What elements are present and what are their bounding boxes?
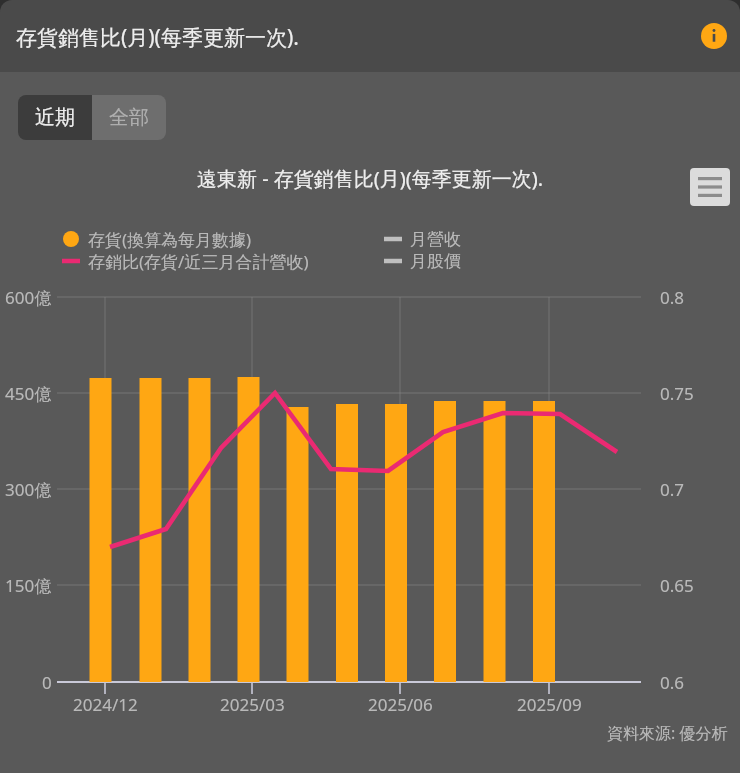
staticText: 資料來源: 優分析 (607, 722, 728, 744)
staticText: 存銷比(存貨/近三月合計營收) (88, 250, 309, 272)
staticText: 存貨(換算為每月數據) (88, 228, 252, 250)
staticText: 2025/09 (517, 693, 582, 716)
button[interactable]: Chart menu (690, 168, 730, 206)
staticText: 0.65 (660, 574, 694, 597)
button[interactable]: 存銷比(存貨/近三月合計營收) (62, 250, 309, 272)
button[interactable]: 存貨(換算為每月數據) (62, 228, 252, 250)
staticText: 600億 (5, 286, 52, 309)
button[interactable]: 近期 (18, 95, 92, 140)
button[interactable]: 全部 (92, 95, 166, 140)
button[interactable]: 月股價 (384, 250, 461, 272)
staticText: 300億 (5, 478, 52, 501)
staticText: 0.75 (660, 382, 694, 405)
staticText: 遠東新 - 存貨銷售比(月)(每季更新一次). (197, 165, 544, 192)
staticText: 0.8 (660, 286, 685, 309)
staticText: 2025/03 (220, 693, 285, 716)
staticText: 0.7 (660, 478, 685, 501)
staticText: 近期 (35, 105, 75, 130)
staticText: 2025/06 (368, 693, 433, 716)
staticText: 450億 (5, 382, 52, 405)
staticText: 存貨銷售比(月)(每季更新一次). (16, 23, 299, 52)
button[interactable]: Information (695, 17, 733, 55)
staticText: 2024/12 (73, 693, 138, 716)
staticText: 0 (42, 671, 52, 694)
staticText: 月營收 (410, 229, 461, 250)
staticText: 150億 (5, 574, 52, 597)
staticText: 月股價 (410, 251, 461, 272)
staticText: 0.6 (660, 671, 685, 694)
button[interactable]: 月營收 (384, 228, 461, 250)
staticText: 全部 (109, 105, 149, 130)
